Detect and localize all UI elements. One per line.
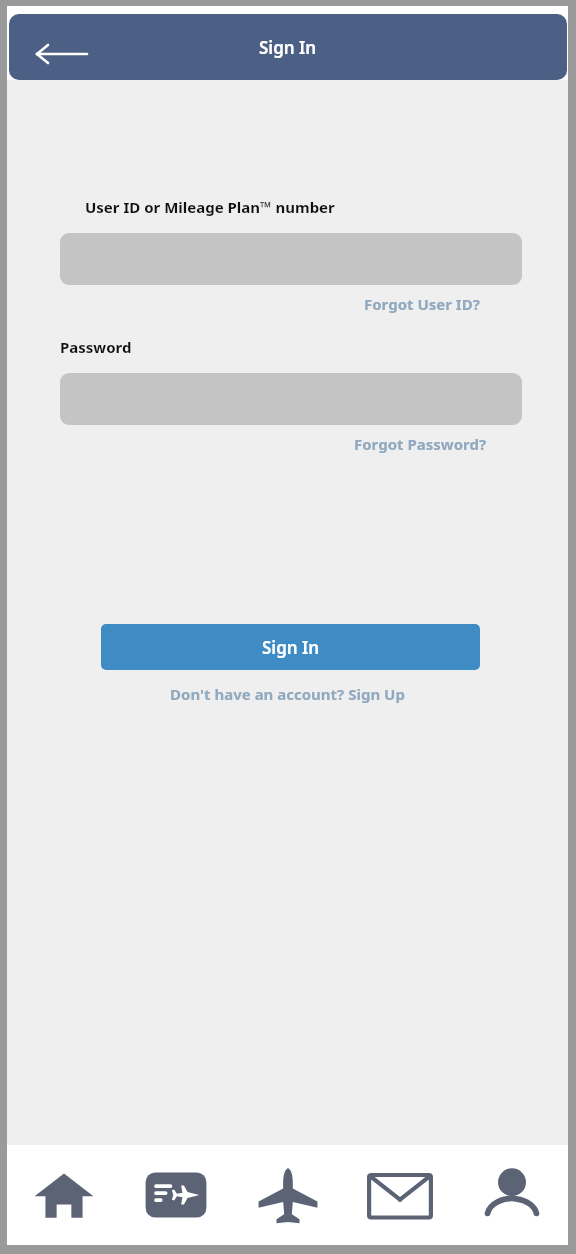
- button[interactable]: Back: [23, 22, 91, 72]
- staticText: Forgot User ID?: [364, 294, 480, 314]
- button[interactable]: Account: [456, 1145, 568, 1245]
- staticText: Don't have an account? Sign Up: [170, 684, 405, 704]
- button[interactable]: Flights: [232, 1145, 344, 1245]
- staticText: User ID or Mileage Plan™ number: [85, 197, 335, 217]
- button[interactable]: Sign In: [101, 624, 480, 670]
- button[interactable]: Don't have an account? Sign Up: [170, 684, 405, 704]
- button[interactable]: Forgot Password?: [354, 434, 487, 454]
- staticText: Password: [60, 337, 132, 357]
- staticText: Sign In: [262, 636, 320, 659]
- button[interactable]: Home: [7, 1145, 120, 1245]
- button[interactable]: Forgot User ID?: [364, 294, 480, 314]
- button[interactable]: Inbox: [344, 1145, 456, 1245]
- staticText: Sign In: [259, 36, 317, 59]
- button[interactable]: Boarding pass: [120, 1145, 232, 1245]
- staticText: Forgot Password?: [354, 434, 487, 454]
